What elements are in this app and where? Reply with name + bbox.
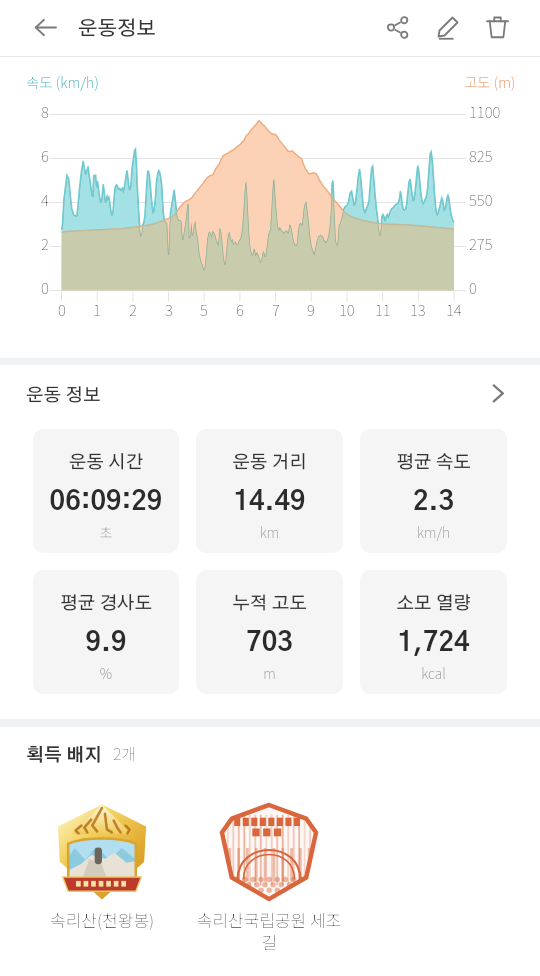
staticText: 4 <box>41 189 49 211</box>
staticText: 운동 거리 <box>196 454 343 472</box>
staticText: 14 <box>446 299 462 321</box>
button[interactable]: 평균 속도 <box>360 429 507 553</box>
staticText: 703 <box>196 630 343 657</box>
button[interactable]: Delete <box>473 3 521 51</box>
staticText: 13 <box>410 299 426 321</box>
staticText: 속도 (km/h) <box>26 71 99 92</box>
staticText: 5 <box>200 299 208 321</box>
button[interactable]: Share <box>373 3 421 51</box>
button[interactable]: 소모 열량 <box>360 570 507 694</box>
staticText: % <box>33 663 179 683</box>
staticText: 고도 (m) <box>464 71 516 92</box>
staticText: m <box>196 663 343 683</box>
staticText: 9.9 <box>33 630 179 657</box>
staticText: 운동 정보 <box>26 387 101 405</box>
staticText: 825 <box>469 145 493 167</box>
staticText: km <box>196 522 343 542</box>
staticText: 초 <box>33 522 179 542</box>
staticText: 평균 속도 <box>360 454 507 472</box>
staticText: 0 <box>41 277 49 299</box>
staticText: 06:09:29 <box>33 489 179 516</box>
staticText: 3 <box>165 299 173 321</box>
staticText: 9 <box>307 299 315 321</box>
staticText: 7 <box>272 299 280 321</box>
staticText: 획득 배지 <box>26 747 103 765</box>
staticText: 운동정보 <box>78 19 156 39</box>
staticText: 8 <box>41 101 49 123</box>
staticText: 평균 경사도 <box>33 595 179 613</box>
button[interactable]: 속리산(천왕봉) <box>24 803 180 932</box>
staticText: 275 <box>469 233 493 255</box>
staticText: kcal <box>360 663 507 683</box>
staticText: 1100 <box>469 101 501 123</box>
button[interactable]: Edit <box>423 3 471 51</box>
staticText: 2.3 <box>360 489 507 516</box>
button[interactable]: 운동 시간 <box>33 429 179 553</box>
staticText: 11 <box>375 299 391 321</box>
button[interactable]: 운동 정보 <box>0 365 540 429</box>
button[interactable]: 평균 경사도 <box>33 570 179 694</box>
staticText: 1,724 <box>360 630 507 657</box>
button[interactable]: 누적 고도 <box>196 570 343 694</box>
staticText: 0 <box>469 277 477 299</box>
button[interactable]: 속리산국립공원 세조 길 <box>191 803 347 954</box>
staticText: 2 <box>41 233 49 255</box>
staticText: 누적 고도 <box>196 595 343 613</box>
button[interactable]: Back <box>21 3 69 51</box>
staticText: 6 <box>236 299 244 321</box>
staticText: 14.49 <box>196 489 343 516</box>
staticText: 속리산(천왕봉) <box>24 907 180 932</box>
staticText: 6 <box>41 145 49 167</box>
staticText: 1 <box>93 299 101 321</box>
staticText: 운동 시간 <box>33 454 179 472</box>
staticText: 550 <box>469 189 493 211</box>
button[interactable]: 운동 거리 <box>196 429 343 553</box>
staticText: 2개 <box>113 741 137 764</box>
staticText: 속리산국립공원 세조 길 <box>191 907 347 954</box>
staticText: 10 <box>339 299 355 321</box>
staticText: km/h <box>360 522 507 542</box>
staticText: 0 <box>58 299 66 321</box>
staticText: 2 <box>129 299 137 321</box>
staticText: 소모 열량 <box>360 595 507 613</box>
